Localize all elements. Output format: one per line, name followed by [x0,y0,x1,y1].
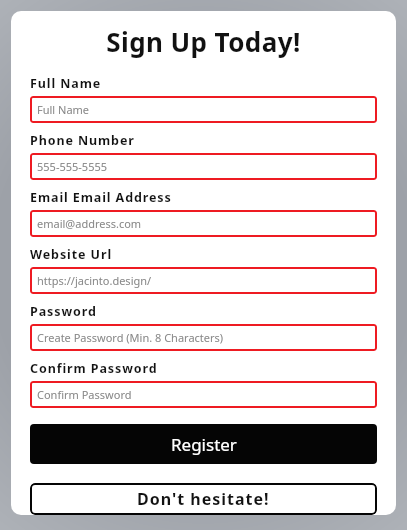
staticText: email@address.com [37,216,142,231]
button[interactable]: Confirm Password [30,381,377,408]
button[interactable]: Register [30,424,377,464]
staticText: Create Password (Min. 8 Characters) [37,330,224,345]
staticText: Confirm Password [37,387,132,402]
staticText: Confirm Password [30,360,158,377]
staticText: Phone Number [30,132,135,149]
staticText: Full Name [30,75,102,92]
staticText: Website Url [30,246,113,263]
button[interactable]: https://jacinto.design/ [30,267,377,294]
staticText: Sign Up Today! [30,24,377,59]
staticText: Register [171,433,237,456]
button[interactable]: Create Password (Min. 8 Characters) [30,324,377,351]
button[interactable]: Don't hesitate! [30,483,377,515]
staticText: 555-555-5555 [37,159,108,174]
button[interactable]: email@address.com [30,210,377,237]
staticText: Don't hesitate! [137,488,270,510]
staticText: https://jacinto.design/ [37,273,152,288]
staticText: Email Email Address [30,189,172,206]
button[interactable]: 555-555-5555 [30,153,377,180]
button[interactable]: Full Name [30,96,377,123]
staticText: Password [30,303,97,320]
staticText: Full Name [37,102,90,117]
